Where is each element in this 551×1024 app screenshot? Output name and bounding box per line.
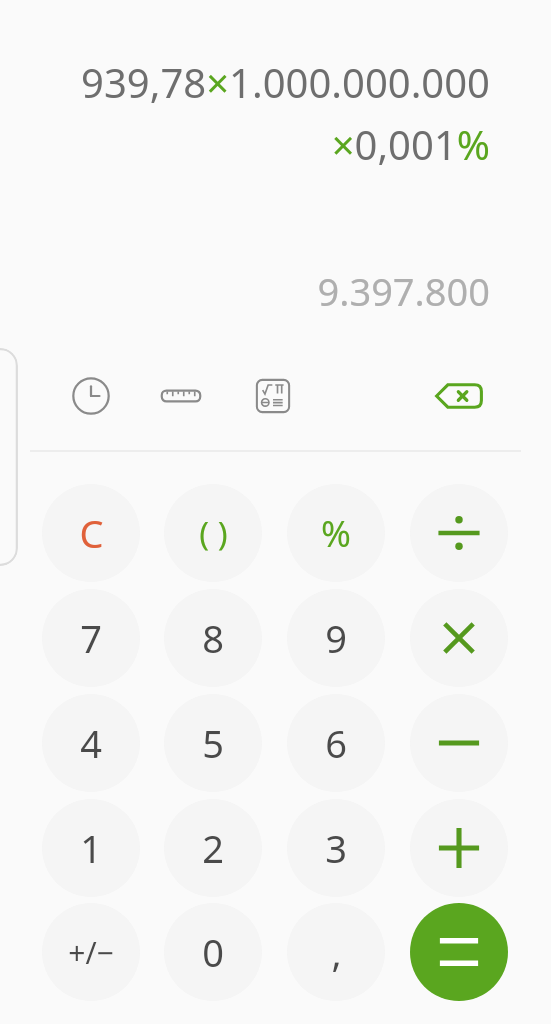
button[interactable]: History [65, 370, 117, 422]
staticText: 9 [325, 612, 347, 664]
button[interactable]: 7 [42, 589, 140, 687]
button[interactable]: Scientific calculator [247, 370, 299, 422]
button[interactable]: , [287, 903, 385, 1001]
staticText: 5 [202, 717, 224, 769]
staticText: 8 [202, 612, 224, 664]
staticText: ( ) [199, 511, 228, 556]
button[interactable]: 2 [164, 799, 262, 897]
button[interactable]: 4 [42, 694, 140, 792]
button[interactable]: 6 [287, 694, 385, 792]
staticText: +/− [68, 932, 114, 973]
button[interactable]: Multiply [410, 589, 508, 687]
staticText: 4 [80, 717, 102, 769]
button[interactable]: ( ) [164, 484, 262, 582]
staticText: 0 [202, 926, 224, 978]
staticText: % [321, 509, 351, 558]
staticText: ×0,001% [20, 117, 490, 171]
button[interactable]: 1 [42, 799, 140, 897]
button[interactable]: 0 [164, 903, 262, 1001]
staticText: 939,78×1.000.000.000 [20, 55, 490, 109]
button[interactable]: Backspace [431, 368, 487, 424]
staticText: C [79, 507, 104, 559]
button[interactable]: 9 [287, 589, 385, 687]
button[interactable]: +/− [42, 903, 140, 1001]
staticText: , [331, 926, 342, 978]
staticText: 2 [202, 822, 224, 874]
button[interactable]: Divide [410, 484, 508, 582]
button[interactable]: Equals [410, 903, 508, 1001]
button[interactable]: % [287, 484, 385, 582]
button[interactable]: 5 [164, 694, 262, 792]
staticText: 9.397.800 [0, 265, 490, 317]
button[interactable]: Unit converter [155, 370, 207, 422]
staticText: 1 [80, 822, 102, 874]
button[interactable]: 8 [164, 589, 262, 687]
button[interactable]: Minus [410, 694, 508, 792]
button[interactable]: 3 [287, 799, 385, 897]
staticText: 6 [325, 717, 347, 769]
button[interactable]: Plus [410, 799, 508, 897]
button[interactable]: C [42, 484, 140, 582]
staticText: 7 [80, 612, 102, 664]
staticText: 3 [325, 822, 347, 874]
